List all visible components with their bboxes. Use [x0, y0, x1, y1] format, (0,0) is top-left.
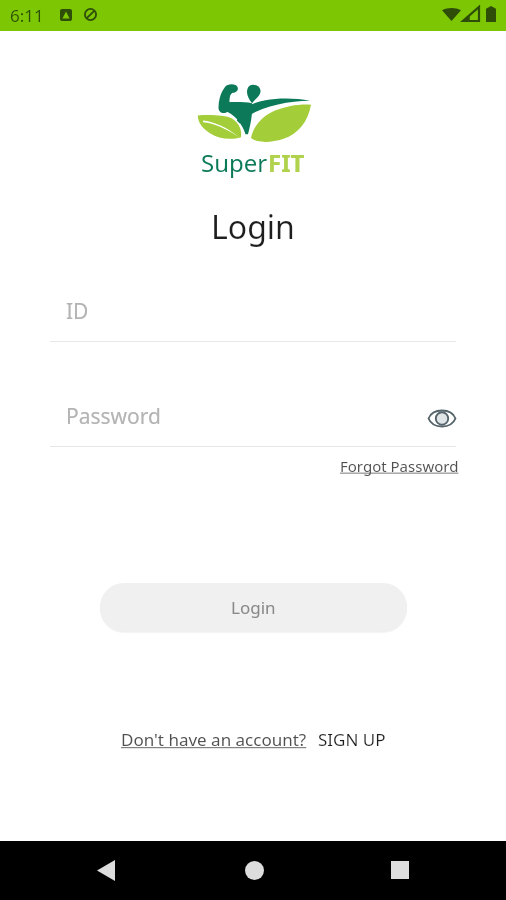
button[interactable]: Back [82, 846, 130, 894]
button[interactable]: Login [100, 583, 407, 631]
staticText: Don't have an account? [121, 728, 307, 751]
button[interactable]: Home [230, 846, 278, 894]
staticText: Super [201, 146, 268, 179]
staticText: ID [66, 297, 89, 326]
staticText: FIT [268, 146, 305, 179]
button[interactable]: Show password [422, 398, 462, 438]
button[interactable]: SIGN UP [318, 728, 386, 751]
button[interactable]: Don't have an account? [121, 728, 307, 751]
button[interactable]: Forgot Password [340, 456, 459, 476]
staticText: Login [231, 596, 276, 619]
staticText: Forgot Password [340, 456, 459, 476]
staticText: 6:11 [10, 4, 44, 27]
staticText: Login [211, 205, 295, 249]
staticText: Password [66, 402, 161, 431]
staticText: SIGN UP [318, 728, 386, 751]
button[interactable]: Recents [376, 846, 424, 894]
